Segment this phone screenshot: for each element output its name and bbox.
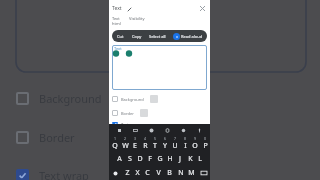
staticText: Background [121, 97, 144, 102]
button[interactable]: J [175, 151, 185, 166]
staticText: G [157, 154, 163, 164]
button[interactable]: Clipboard [162, 125, 173, 136]
staticText: Text [114, 46, 122, 51]
staticText: 9 [194, 136, 197, 141]
button[interactable]: Read aloud [171, 33, 205, 40]
button[interactable]: B [164, 166, 175, 180]
staticText: J [179, 154, 181, 164]
staticText: O [192, 141, 198, 151]
staticText: Cut [117, 34, 124, 39]
button[interactable]: Menu [114, 125, 125, 136]
button[interactable]: 2 [120, 136, 130, 151]
staticText: 2 [124, 136, 127, 141]
staticText: E [133, 141, 137, 151]
button[interactable]: 7 [170, 136, 180, 151]
button[interactable]: Background [16, 88, 102, 108]
button[interactable]: Border [16, 127, 75, 147]
staticText: Border [121, 111, 134, 116]
button[interactable]: K [185, 151, 195, 166]
button[interactable]: 1 [109, 136, 120, 151]
button[interactable]: C [142, 166, 153, 180]
button[interactable]: N [175, 166, 186, 180]
staticText: 1 [114, 136, 117, 141]
staticText: M [188, 168, 195, 178]
button[interactable]: V [153, 166, 164, 180]
button[interactable]: Z [122, 166, 132, 180]
staticText: 3 [134, 136, 137, 141]
staticText: L [198, 154, 202, 164]
button[interactable]: Copy [129, 32, 145, 41]
staticText: Background [39, 91, 102, 106]
staticText: H [167, 154, 173, 164]
button[interactable]: H [165, 151, 175, 166]
staticText: S [128, 154, 132, 164]
staticText: 5 [154, 136, 157, 141]
button[interactable]: Edit [125, 5, 133, 13]
staticText: I [184, 141, 187, 151]
staticText: D [137, 154, 143, 164]
staticText: Text wrap [121, 122, 140, 124]
button[interactable]: Shift [109, 166, 122, 180]
button[interactable]: 0 [200, 136, 210, 151]
button[interactable]: Voice input [194, 125, 205, 136]
button[interactable]: Text [112, 45, 207, 90]
button[interactable]: X [132, 166, 142, 180]
button[interactable]: Emoji [146, 125, 157, 136]
button[interactable]: Backspace [197, 166, 210, 180]
staticText: P [203, 141, 208, 151]
staticText: Select all [149, 34, 166, 39]
staticText: 4 [144, 136, 147, 141]
staticText: F [148, 154, 152, 164]
staticText: Z [125, 168, 130, 178]
button[interactable]: Background [112, 94, 207, 104]
button[interactable]: 5 [150, 136, 160, 151]
button[interactable]: 9 [190, 136, 200, 151]
staticText: Text [112, 16, 120, 21]
button[interactable]: Text wrap [16, 165, 89, 180]
staticText: T [153, 141, 157, 151]
staticText: 0 [204, 136, 207, 141]
staticText: 7 [174, 136, 177, 141]
staticText: N [178, 168, 184, 178]
button[interactable]: 8 [180, 136, 190, 151]
staticText: X [135, 168, 140, 178]
button[interactable]: Border [112, 108, 207, 118]
button[interactable]: Settings [178, 125, 189, 136]
button[interactable]: S [125, 151, 135, 166]
staticText: C [145, 168, 150, 178]
staticText: html [112, 21, 121, 26]
staticText: Text wrap [39, 168, 89, 180]
button[interactable]: Cut [114, 32, 127, 41]
button[interactable]: Close [198, 4, 207, 13]
staticText: Visibility [129, 16, 145, 21]
button[interactable]: F [145, 151, 155, 166]
button[interactable]: Select all [146, 32, 169, 41]
button[interactable]: D [135, 151, 145, 166]
staticText: B [167, 168, 172, 178]
staticText: Q [112, 141, 118, 151]
staticText: U [172, 141, 178, 151]
staticText: R [143, 141, 148, 151]
button[interactable]: A [114, 151, 125, 166]
button[interactable]: L [195, 151, 205, 166]
staticText: Copy [132, 34, 142, 39]
staticText: W [122, 141, 129, 151]
button[interactable]: M [186, 166, 197, 180]
button[interactable]: 3 [130, 136, 140, 151]
button[interactable]: G [155, 151, 165, 166]
staticText: A [117, 154, 122, 164]
button[interactable]: GIF [130, 125, 141, 136]
button[interactable]: 6 [160, 136, 170, 151]
button[interactable]: Text wrap [112, 122, 207, 124]
staticText: 6 [164, 136, 167, 141]
button[interactable]: 4 [140, 136, 150, 151]
staticText: Read aloud [181, 34, 203, 39]
staticText: Text [112, 5, 122, 12]
staticText: K [188, 154, 193, 164]
staticText: V [156, 168, 161, 178]
staticText: Border [39, 130, 75, 145]
staticText: Y [163, 141, 167, 151]
staticText: 8 [184, 136, 187, 141]
